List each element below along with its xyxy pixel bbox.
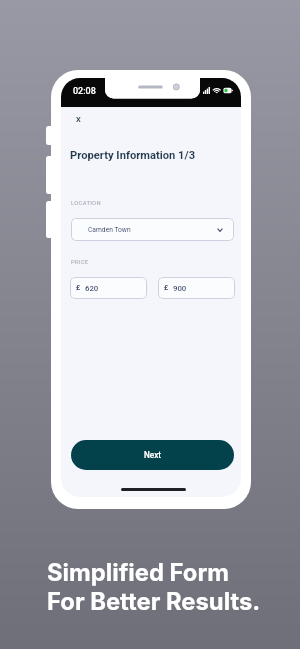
staticText: LOCATION [71, 200, 101, 207]
button[interactable]: Next [71, 440, 234, 470]
staticText: 02:08 [73, 86, 96, 97]
staticText: 900 [173, 284, 187, 293]
staticText: Property Information 1/3 [70, 149, 196, 162]
staticText: PRICE [71, 259, 89, 266]
staticText: Simplified Form [47, 558, 230, 587]
button[interactable]: Close [64, 105, 92, 133]
staticText: 620 [85, 284, 99, 293]
staticText: For Better Results. [47, 587, 261, 616]
button[interactable]: £ [158, 277, 235, 299]
staticText: Next [144, 450, 162, 460]
button[interactable]: Camden Town [71, 218, 234, 241]
staticText: Camden Town [88, 226, 131, 234]
staticText: £ [164, 284, 169, 292]
button[interactable]: £ [70, 277, 147, 299]
staticText: £ [76, 284, 81, 292]
staticText: X [76, 115, 81, 124]
